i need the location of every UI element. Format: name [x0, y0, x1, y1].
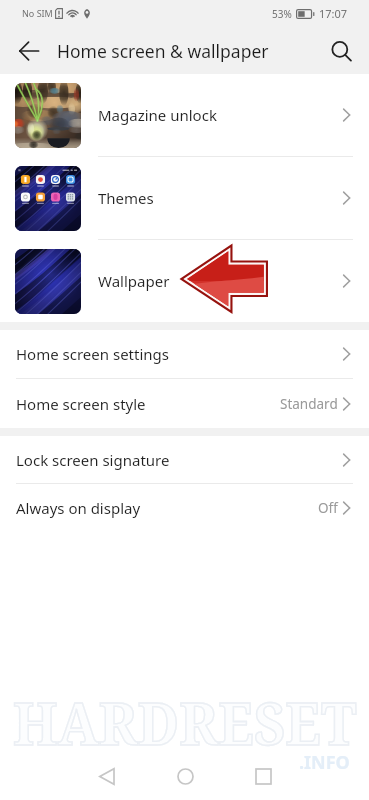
staticText: Standard	[280, 395, 338, 413]
button[interactable]: Home screen settings	[0, 330, 369, 378]
staticText: Themes	[98, 188, 154, 208]
button[interactable]: Search	[322, 32, 360, 70]
staticText: Wallpaper	[98, 271, 170, 291]
button[interactable]: Always on display	[0, 484, 369, 532]
staticText: Always on display	[16, 498, 141, 518]
button[interactable]: Home screen style	[0, 379, 369, 428]
staticText: Home screen & wallpaper	[57, 39, 269, 63]
button[interactable]: Lock screen signature	[0, 436, 369, 483]
staticText: Home screen settings	[16, 344, 169, 364]
button[interactable]: Home	[161, 752, 209, 800]
staticText: 53%	[272, 7, 292, 21]
staticText: 17:07	[319, 6, 348, 21]
button[interactable]: Back	[10, 32, 48, 70]
button[interactable]: Back	[82, 752, 130, 800]
staticText: Off	[318, 499, 338, 517]
button[interactable]: Wallpaper	[0, 240, 369, 322]
button[interactable]: Themes	[0, 157, 369, 239]
staticText: Magazine unlock	[98, 105, 217, 125]
button[interactable]: Magazine unlock	[0, 74, 369, 156]
staticText: Lock screen signature	[16, 450, 170, 470]
staticText: No SIM	[22, 7, 53, 19]
button[interactable]: Recents	[239, 752, 287, 800]
staticText: Home screen style	[16, 394, 146, 414]
